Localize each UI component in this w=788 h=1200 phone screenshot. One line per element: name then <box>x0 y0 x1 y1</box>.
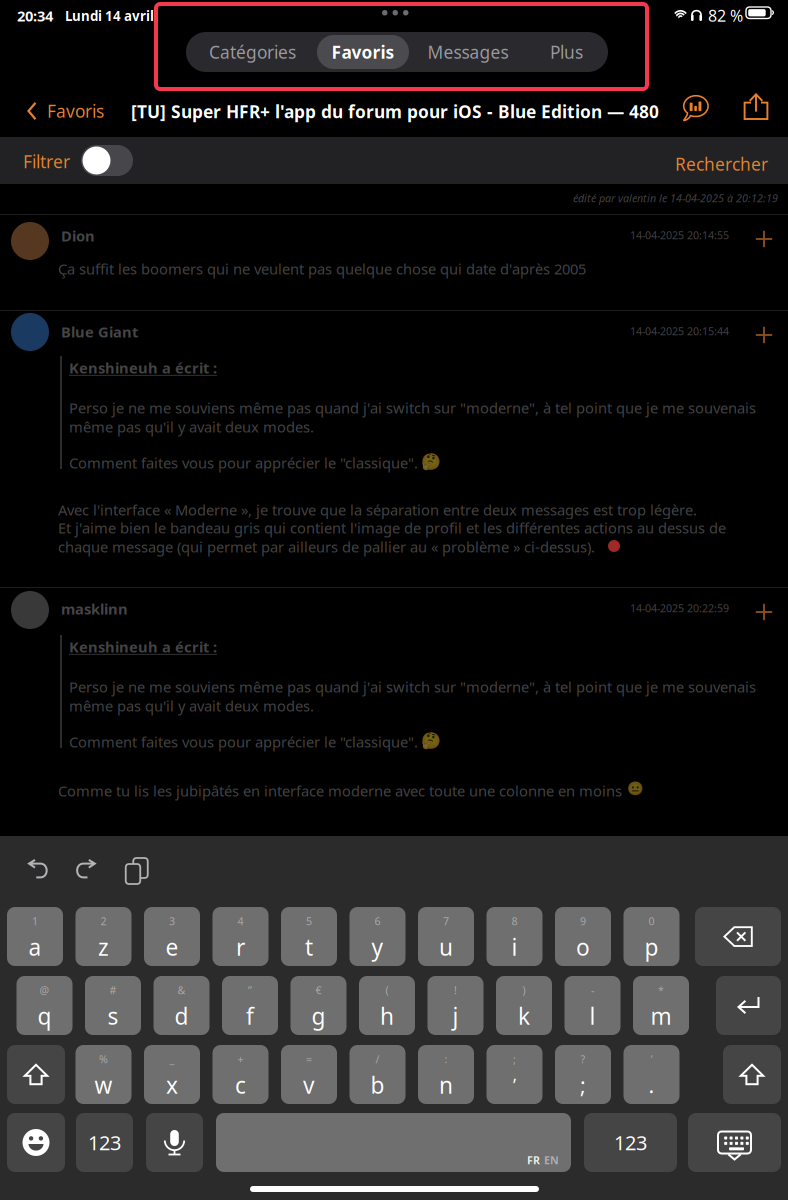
button[interactable]: ” <box>222 976 278 1035</box>
button[interactable]: Partager <box>736 87 776 127</box>
button[interactable]: Coller <box>118 852 148 884</box>
button[interactable]: 123 <box>584 1113 677 1172</box>
button[interactable]: Espace <box>216 1113 571 1172</box>
staticText: 1 <box>32 914 38 928</box>
staticText: ( <box>385 983 388 997</box>
staticText: Kenshineuh a écrit : <box>69 358 217 377</box>
button[interactable]: Annuler <box>21 853 55 885</box>
staticText: Rechercher <box>675 152 768 175</box>
button[interactable]: 123 <box>76 1113 133 1172</box>
staticText: Favoris <box>47 99 104 122</box>
staticText: 8 <box>511 914 517 928</box>
staticText: Messages <box>427 40 508 63</box>
button[interactable]: 6 <box>349 907 405 966</box>
button[interactable]: = <box>281 1045 337 1104</box>
button[interactable]: Plus <box>527 35 606 69</box>
staticText: 4 <box>237 914 243 928</box>
staticText: d <box>174 1001 188 1031</box>
button[interactable]: 9 <box>555 907 611 966</box>
button[interactable]: Actions du message <box>751 322 777 348</box>
staticText: y <box>371 932 383 962</box>
staticText: x <box>166 1070 178 1100</box>
staticText: + <box>237 1052 243 1066</box>
staticText: ? <box>580 1052 585 1066</box>
button[interactable]: Filtrer <box>81 145 133 176</box>
staticText: - <box>591 983 594 997</box>
staticText: : <box>444 1052 447 1066</box>
staticText: n <box>439 1070 453 1100</box>
button[interactable]: Retour <box>716 976 781 1035</box>
staticText: Perso je ne me souviens même pas quand j… <box>69 677 756 696</box>
button[interactable]: € <box>290 976 346 1035</box>
button[interactable]: Majuscules <box>723 1045 781 1104</box>
button[interactable]: Majuscules <box>7 1045 65 1104</box>
button[interactable]: Actions du message <box>751 226 777 252</box>
button[interactable]: @ <box>16 976 72 1035</box>
button[interactable]: Favoris <box>317 35 409 69</box>
staticText: @ <box>39 983 49 997</box>
button[interactable]: 0 <box>623 907 679 966</box>
staticText: masklinn <box>61 599 128 618</box>
staticText: 🤔 <box>421 452 441 470</box>
button[interactable]: Dictée <box>146 1113 203 1172</box>
staticText: Comment faites vous pour apprécier le "c… <box>69 453 418 472</box>
staticText: q <box>37 1001 51 1031</box>
button[interactable]: Statistiques du sujet <box>676 88 716 128</box>
button[interactable]: ! <box>427 976 483 1035</box>
button[interactable]: : <box>418 1045 474 1104</box>
button[interactable]: Catégories <box>188 35 317 69</box>
button[interactable]: Favoris <box>27 91 119 131</box>
staticText: 2 <box>100 914 106 928</box>
staticText: z <box>98 932 109 962</box>
staticText: # <box>109 983 116 997</box>
button[interactable]: # <box>85 976 141 1035</box>
staticText: Lundi 14 avril <box>65 7 154 25</box>
button[interactable]: - <box>564 976 620 1035</box>
staticText: / <box>375 1052 379 1066</box>
button[interactable]: ; <box>486 1045 542 1104</box>
button[interactable]: ) <box>496 976 552 1035</box>
staticText: ” <box>248 983 252 997</box>
button[interactable]: 1 <box>7 907 63 966</box>
button[interactable]: 4 <box>212 907 268 966</box>
staticText: p <box>644 932 658 962</box>
button[interactable]: Supprimer <box>695 907 781 966</box>
staticText: Perso je ne me souviens même pas quand j… <box>69 398 756 417</box>
staticText: 14-04-2025 20:15:44 <box>630 324 729 338</box>
staticText: b <box>370 1070 384 1100</box>
staticText: v <box>303 1070 315 1100</box>
button[interactable]: Emoji <box>7 1113 65 1172</box>
staticText: s <box>107 1001 118 1031</box>
staticText: 9 <box>580 914 586 928</box>
button[interactable]: Rétablir <box>69 853 103 885</box>
button[interactable]: % <box>75 1045 131 1104</box>
button[interactable]: 2 <box>75 907 131 966</box>
button[interactable]: 5 <box>281 907 337 966</box>
button[interactable]: ' <box>623 1045 679 1104</box>
staticText: w <box>94 1070 112 1100</box>
button[interactable]: & <box>153 976 209 1035</box>
button[interactable]: ( <box>359 976 415 1035</box>
button[interactable]: * <box>633 976 689 1035</box>
staticText: [TU] Super HFR+ l'app du forum pour iOS … <box>131 100 659 123</box>
button[interactable]: + <box>212 1045 268 1104</box>
staticText: 20:34 <box>17 6 53 25</box>
button[interactable]: 7 <box>418 907 474 966</box>
button[interactable]: Rechercher <box>648 149 768 179</box>
staticText: Kenshineuh a écrit : <box>69 637 217 656</box>
button[interactable]: Messages <box>409 35 527 69</box>
button[interactable]: Masquer le clavier <box>688 1113 781 1172</box>
button[interactable]: Actions du message <box>751 599 777 625</box>
staticText: ; <box>513 1052 516 1066</box>
staticText: 7 <box>443 914 449 928</box>
staticText: t <box>305 932 313 962</box>
button[interactable]: ? <box>555 1045 611 1104</box>
button[interactable]: / <box>349 1045 405 1104</box>
staticText: Et j'aime bien le bandeau gris qui conti… <box>58 518 726 537</box>
staticText: 0 <box>648 914 654 928</box>
staticText: j <box>452 1001 458 1031</box>
staticText: u <box>439 932 453 962</box>
button[interactable]: _ <box>144 1045 200 1104</box>
button[interactable]: 3 <box>144 907 200 966</box>
button[interactable]: 8 <box>486 907 542 966</box>
